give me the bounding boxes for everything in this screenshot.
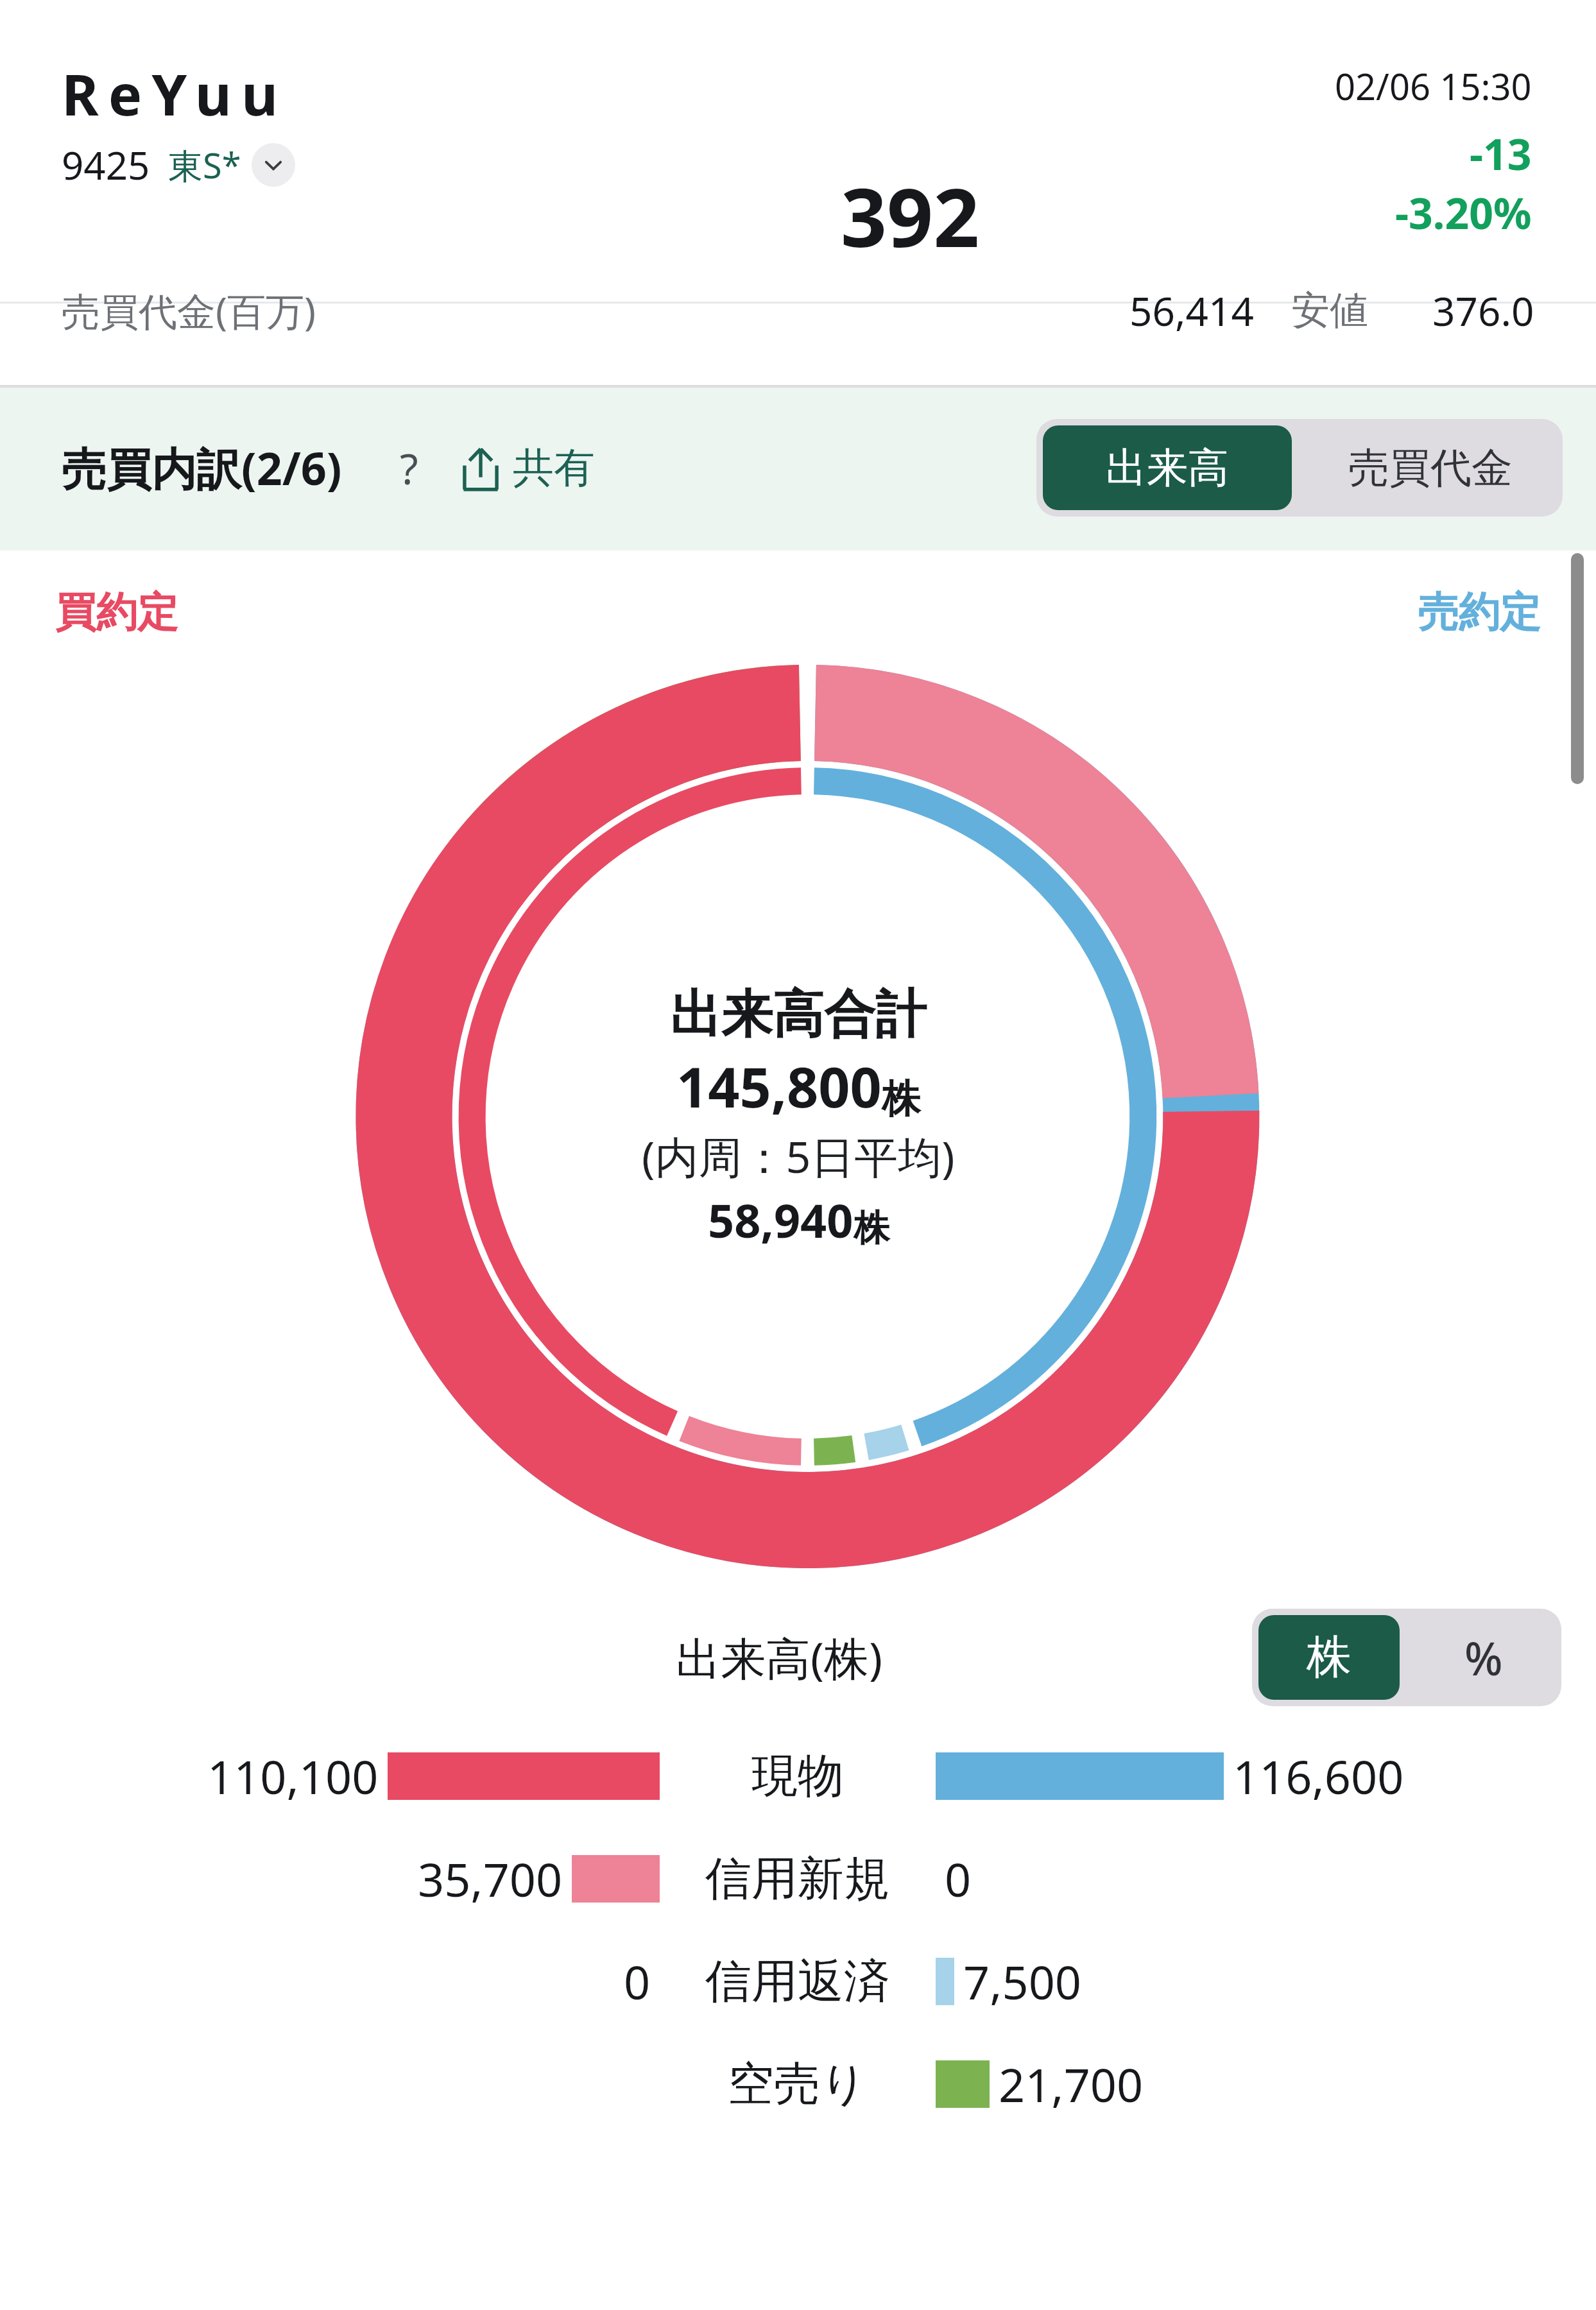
button[interactable]: 共有: [450, 434, 601, 502]
staticText: 共有: [513, 442, 595, 494]
staticText: (内周：5日平均): [642, 1126, 955, 1186]
staticText: 21,700: [999, 2053, 1144, 2116]
button[interactable]: 出来高: [1043, 425, 1292, 510]
staticText: 売買内訳(2/6): [62, 437, 342, 499]
staticText: 株: [1307, 1629, 1351, 1686]
staticText: 株: [854, 1206, 889, 1251]
staticText: 7,500: [963, 1950, 1082, 2013]
staticText: 出来高(株): [676, 1627, 882, 1688]
staticText: 東S*: [168, 141, 241, 189]
button[interactable]: %: [1412, 1615, 1555, 1700]
staticText: 145,800: [676, 1048, 882, 1124]
staticText: -13: [1470, 124, 1532, 182]
staticText: ReYuu: [62, 55, 288, 132]
staticText: ?: [400, 439, 418, 497]
staticText: 売約定: [1418, 586, 1541, 638]
staticText: 9425: [62, 139, 150, 191]
staticText: 110,100: [207, 1745, 379, 1808]
staticText: %: [1464, 1627, 1503, 1688]
staticText: 58,940: [708, 1188, 854, 1251]
staticText: 現物: [751, 1747, 844, 1806]
staticText: 56,414: [1129, 284, 1254, 338]
staticText: 株: [882, 1075, 920, 1124]
staticText: -3.20%: [1395, 184, 1532, 241]
button[interactable]: ヘルプ: [378, 437, 440, 499]
button[interactable]: 株: [1258, 1615, 1400, 1700]
staticText: 02/06 15:30: [1335, 62, 1532, 110]
staticText: 出来高: [1106, 442, 1229, 494]
staticText: 信用返済: [705, 1953, 890, 2011]
staticText: 売買代金(百万): [62, 284, 316, 337]
staticText: 信用新規: [705, 1850, 890, 1908]
staticText: 安値: [1291, 286, 1368, 335]
staticText: 買約定: [55, 586, 178, 638]
staticText: 0: [945, 1847, 972, 1910]
staticText: 35,700: [418, 1847, 563, 1910]
staticText: 392: [841, 160, 980, 271]
staticText: 空売り: [728, 2055, 868, 2114]
button[interactable]: 市場を切り替え: [252, 143, 295, 187]
button[interactable]: 売買代金: [1305, 425, 1556, 510]
staticText: 116,600: [1233, 1745, 1404, 1808]
staticText: 0: [624, 1950, 651, 2013]
staticText: 376.0: [1432, 284, 1534, 338]
staticText: 売買代金: [1348, 442, 1513, 494]
staticText: 出来高合計: [670, 982, 927, 1047]
